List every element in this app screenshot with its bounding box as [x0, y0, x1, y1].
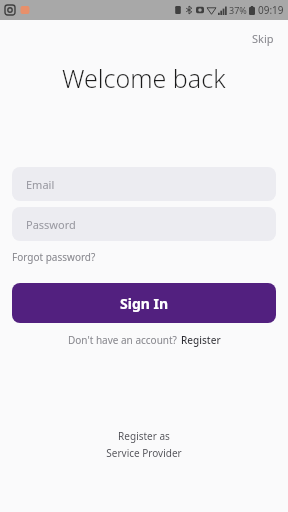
staticText: Password	[26, 217, 76, 232]
button[interactable]: Register as	[82, 425, 206, 464]
staticText: Don't have an account?	[68, 333, 177, 347]
staticText: Register as	[118, 429, 170, 443]
staticText: 37%	[229, 4, 247, 16]
staticText: Forgot password?	[12, 250, 96, 264]
staticText: Sign In	[120, 294, 169, 313]
staticText: Skip	[252, 31, 274, 46]
staticText: Welcome back	[62, 61, 226, 95]
staticText: Register	[181, 333, 221, 347]
button[interactable]: Password	[12, 207, 276, 241]
staticText: Email	[26, 177, 55, 192]
button[interactable]: Skip	[238, 28, 288, 49]
button[interactable]: Forgot password?	[12, 247, 96, 267]
staticText: Service Provider	[106, 446, 182, 460]
button[interactable]: Sign In	[12, 283, 276, 323]
button[interactable]: Register	[177, 331, 221, 349]
button[interactable]: Email	[12, 167, 276, 201]
staticText: 09:19	[258, 3, 284, 17]
